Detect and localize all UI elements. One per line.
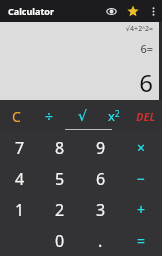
button[interactable]: More options xyxy=(144,0,162,22)
button[interactable]: × xyxy=(121,132,162,163)
staticText: 9 xyxy=(96,137,106,159)
button[interactable]: C xyxy=(0,100,33,132)
staticText: 0 xyxy=(55,230,65,252)
staticText: DEL xyxy=(136,109,156,124)
staticText: 4 xyxy=(15,168,25,190)
button[interactable]: √ xyxy=(66,100,98,132)
button[interactable]: . xyxy=(80,225,121,256)
button[interactable]: − xyxy=(121,163,162,194)
button[interactable]: 4 xyxy=(0,163,40,194)
button[interactable]: 8 xyxy=(40,132,80,163)
staticText: 3 xyxy=(96,199,106,221)
staticText: × xyxy=(137,138,146,157)
staticText: 5 xyxy=(55,168,65,190)
staticText: √4+2^2= xyxy=(125,24,153,34)
button[interactable]: Favorite xyxy=(122,0,144,22)
staticText: C xyxy=(12,107,21,126)
staticText: − xyxy=(137,169,146,188)
staticText: 2 xyxy=(55,199,65,221)
staticText: 7 xyxy=(15,137,25,159)
button[interactable]: 9 xyxy=(80,132,121,163)
button[interactable]: ÷ xyxy=(33,100,66,132)
staticText: 8 xyxy=(55,137,65,159)
button[interactable]: Preview xyxy=(100,0,122,22)
staticText: . xyxy=(98,230,103,252)
staticText: √ xyxy=(78,108,87,124)
button[interactable]: 6 xyxy=(80,163,121,194)
staticText: 6 xyxy=(96,168,106,190)
staticText: Calculator xyxy=(8,5,54,17)
staticText: ÷ xyxy=(45,107,54,126)
staticText: 1 xyxy=(15,199,25,221)
button[interactable]: 1 xyxy=(0,194,40,225)
staticText: + xyxy=(137,200,146,219)
button[interactable]: = xyxy=(121,225,162,256)
staticText: x2 xyxy=(108,107,120,125)
button[interactable]: 2 xyxy=(40,194,80,225)
button[interactable]: 0 xyxy=(40,225,80,256)
button[interactable]: + xyxy=(121,194,162,225)
button[interactable]: 3 xyxy=(80,194,121,225)
staticText: 6= xyxy=(140,41,153,56)
button[interactable]: x2 xyxy=(98,100,130,132)
staticText: 6 xyxy=(139,66,153,99)
staticText: = xyxy=(137,231,146,250)
button[interactable]: 7 xyxy=(0,132,40,163)
button[interactable]: DEL xyxy=(130,100,162,132)
button[interactable]: 5 xyxy=(40,163,80,194)
